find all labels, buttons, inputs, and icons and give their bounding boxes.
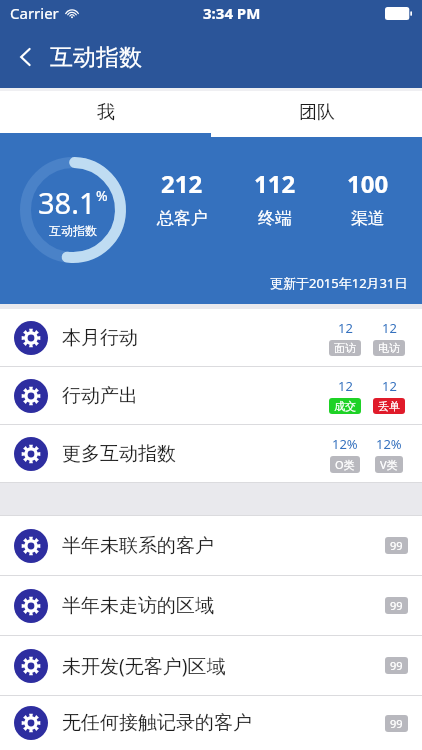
staticText: 总客户 — [157, 208, 208, 229]
staticText: Carrier — [10, 3, 59, 23]
staticText: 38.1 — [38, 183, 96, 222]
button[interactable]: 更多互动指数 — [0, 425, 422, 482]
staticText: 99 — [390, 538, 403, 553]
staticText: 本月行动 — [62, 326, 326, 350]
staticText: 未开发(无客户)区域 — [62, 653, 385, 679]
staticText: 12 — [382, 319, 397, 337]
button[interactable]: Back — [4, 35, 48, 79]
button[interactable]: 我 — [0, 91, 211, 133]
button[interactable]: 本月行动 — [0, 309, 422, 366]
button[interactable]: 未开发(无客户)区域 — [0, 636, 422, 695]
button[interactable]: 半年未走访的区域 — [0, 576, 422, 635]
staticText: 我 — [97, 101, 115, 124]
button[interactable]: 行动产出 — [0, 367, 422, 424]
button[interactable]: 无任何接触记录的客户 — [0, 696, 422, 750]
button[interactable]: 团队 — [211, 91, 422, 133]
staticText: 3:34 PM — [203, 3, 261, 23]
staticText: 无任何接触记录的客户 — [62, 711, 385, 735]
staticText: 100 — [347, 167, 389, 200]
staticText: 丢单 — [378, 399, 400, 413]
staticText: 互动指数 — [50, 43, 142, 72]
staticText: 半年未走访的区域 — [62, 594, 385, 618]
button[interactable]: 半年未联系的客户 — [0, 516, 422, 575]
staticText: 团队 — [299, 101, 335, 124]
staticText: 面访 — [334, 341, 356, 355]
staticText: 12 — [338, 319, 353, 337]
staticText: V类 — [380, 457, 398, 472]
staticText: 112 — [254, 167, 296, 200]
staticText: 更新于2015年12月31日 — [270, 274, 408, 292]
staticText: 212 — [161, 167, 203, 200]
staticText: 终端 — [258, 208, 292, 229]
staticText: 更多互动指数 — [62, 442, 326, 466]
staticText: 12 — [382, 377, 397, 395]
staticText: 渠道 — [351, 208, 385, 229]
staticText: 99 — [390, 598, 403, 613]
staticText: 99 — [390, 658, 403, 673]
staticText: O类 — [335, 457, 355, 472]
staticText: % — [96, 186, 108, 205]
staticText: 99 — [390, 716, 403, 731]
staticText: 电访 — [378, 341, 400, 355]
staticText: 12% — [332, 435, 358, 453]
staticText: 成交 — [334, 399, 356, 413]
staticText: 互动指数 — [49, 223, 97, 238]
staticText: 半年未联系的客户 — [62, 534, 385, 558]
staticText: 行动产出 — [62, 384, 326, 408]
staticText: 12 — [338, 377, 353, 395]
staticText: 12% — [376, 435, 402, 453]
